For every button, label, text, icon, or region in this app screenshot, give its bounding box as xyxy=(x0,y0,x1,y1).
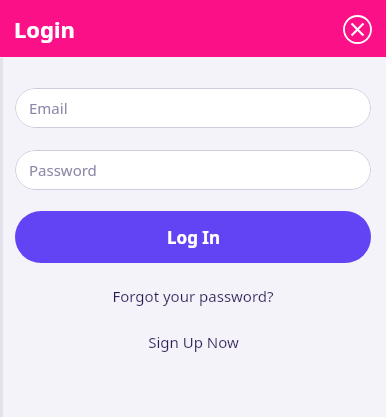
button[interactable]: Email xyxy=(15,88,371,128)
button[interactable]: Forgot your password? xyxy=(0,279,386,313)
button[interactable]: Log In xyxy=(15,211,371,263)
button[interactable]: Sign Up Now xyxy=(0,325,386,359)
staticText: Password xyxy=(29,160,97,180)
staticText: Email xyxy=(29,98,68,118)
staticText: Forgot your password? xyxy=(112,286,274,306)
button[interactable]: Close xyxy=(339,11,375,47)
staticText: Login xyxy=(14,14,75,44)
button[interactable]: Password xyxy=(15,150,371,190)
staticText: Log In xyxy=(167,226,220,249)
staticText: Sign Up Now xyxy=(148,332,239,352)
